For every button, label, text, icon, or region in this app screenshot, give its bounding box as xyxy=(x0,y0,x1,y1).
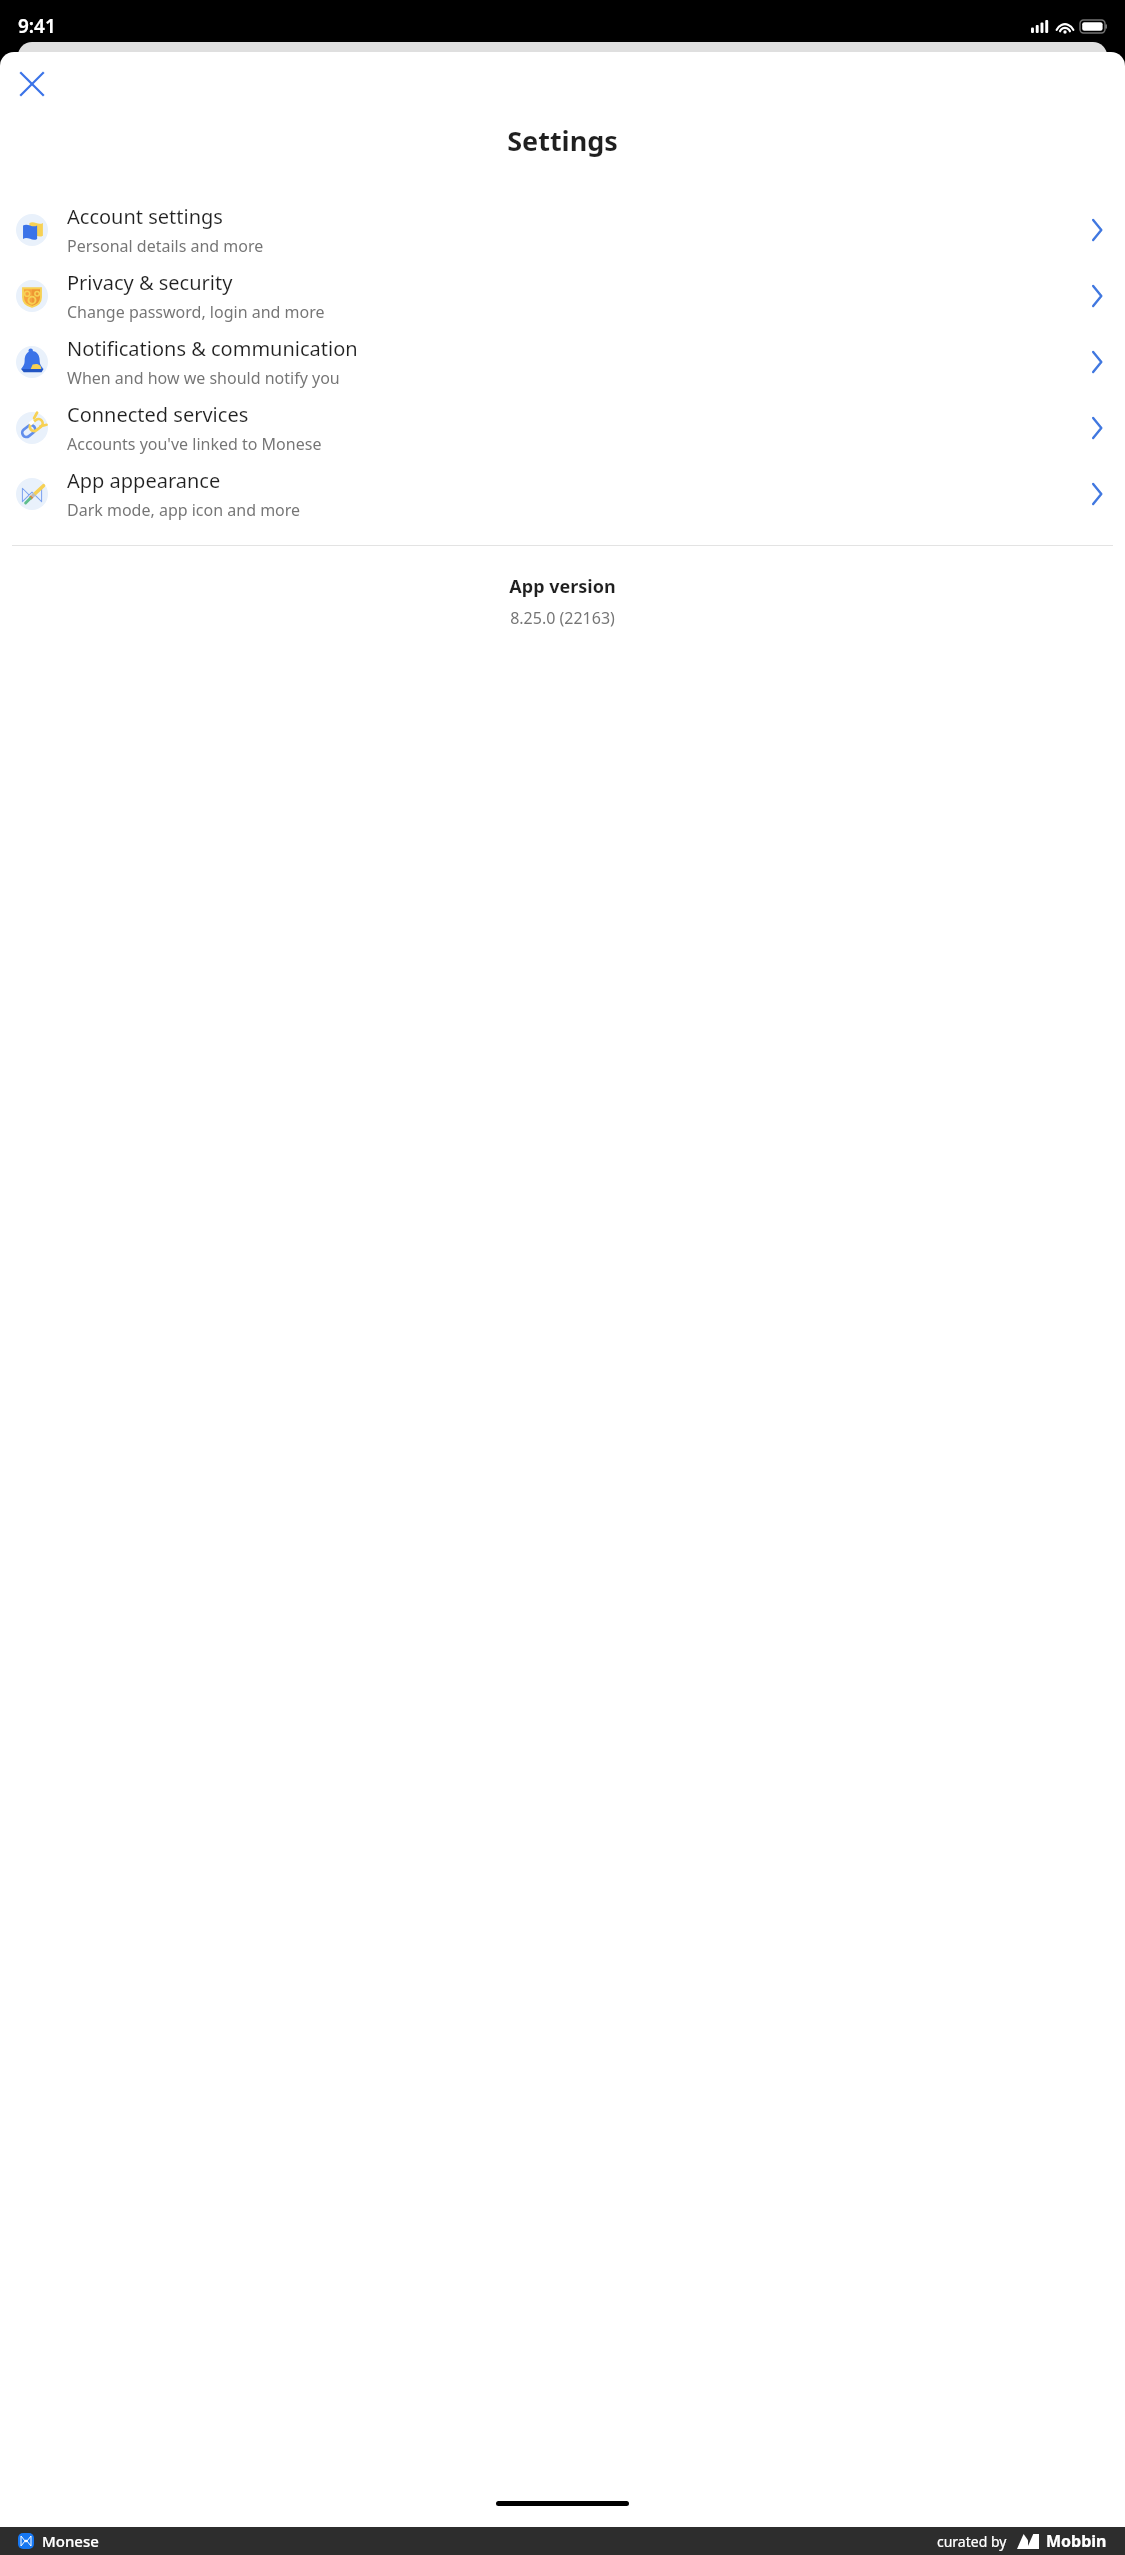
staticText: curated by xyxy=(937,2532,1007,2551)
staticText: Connected services xyxy=(67,401,249,428)
staticText: App appearance xyxy=(67,467,221,494)
staticText: Accounts you've linked to Monese xyxy=(67,433,322,455)
button[interactable]: Privacy & security xyxy=(0,263,1125,329)
staticText: Settings xyxy=(0,122,1125,159)
staticText: Account settings xyxy=(67,203,223,230)
staticText: Personal details and more xyxy=(67,235,264,257)
staticText: Notifications & communication xyxy=(67,335,358,362)
button[interactable]: Connected services xyxy=(0,395,1125,461)
staticText: Dark mode, app icon and more xyxy=(67,499,301,521)
button[interactable]: Notifications & communication xyxy=(0,329,1125,395)
button[interactable]: Account settings xyxy=(0,197,1125,263)
button[interactable]: Close xyxy=(8,60,56,108)
staticText: App version xyxy=(0,574,1125,599)
staticText: Change password, login and more xyxy=(67,301,325,323)
staticText: Privacy & security xyxy=(67,269,233,296)
button[interactable]: App appearance xyxy=(0,461,1125,527)
staticText: When and how we should notify you xyxy=(67,367,340,389)
staticText: Mobbin xyxy=(1046,2530,1107,2552)
staticText: Monese xyxy=(42,2531,99,2551)
staticText: 8.25.0 (22163) xyxy=(0,607,1125,629)
staticText: 9:41 xyxy=(18,13,56,39)
